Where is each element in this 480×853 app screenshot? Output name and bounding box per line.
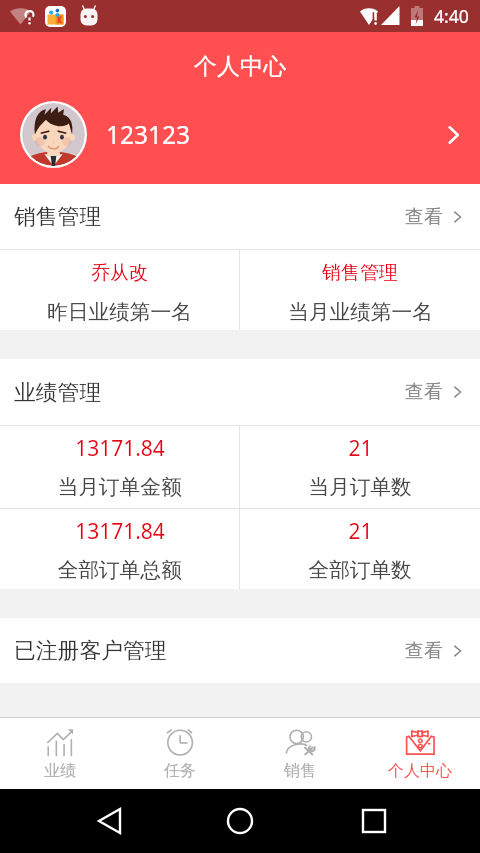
- staticText: 全部订单总额: [57, 557, 182, 583]
- button[interactable]: 个人中心: [360, 718, 480, 789]
- staticText: 个人中心: [388, 761, 452, 781]
- staticText: 123123: [106, 118, 191, 151]
- staticText: 昨日业绩第一名: [47, 299, 192, 325]
- staticText: 当月订单金额: [57, 474, 182, 500]
- staticText: 全部订单数: [308, 557, 412, 583]
- staticText: 13171.84: [75, 434, 165, 463]
- staticText: 查看: [405, 639, 443, 663]
- button[interactable]: 业绩: [0, 718, 120, 789]
- staticText: 4:40: [434, 4, 469, 28]
- button[interactable]: 销售: [240, 718, 360, 789]
- staticText: 业绩管理: [14, 379, 102, 406]
- staticText: 任务: [164, 761, 196, 781]
- staticText: 乔从改: [91, 261, 148, 285]
- button[interactable]: 销售管理: [0, 184, 480, 249]
- button[interactable]: 乔从改: [0, 250, 239, 330]
- button[interactable]: 业绩管理: [0, 359, 480, 425]
- staticText: 查看: [405, 380, 443, 404]
- button[interactable]: 任务: [120, 718, 240, 789]
- staticText: 21: [348, 517, 373, 546]
- staticText: 当月订单数: [308, 474, 412, 500]
- staticText: 销售管理: [322, 261, 398, 285]
- staticText: 查看: [405, 205, 443, 229]
- staticText: 个人中心: [194, 52, 286, 81]
- button[interactable]: 123123: [0, 101, 480, 168]
- staticText: 13171.84: [75, 517, 165, 546]
- staticText: 销售: [284, 761, 316, 781]
- staticText: 业绩: [44, 761, 76, 781]
- button[interactable]: 已注册客户管理: [0, 618, 480, 683]
- button[interactable]: 21: [240, 509, 480, 589]
- staticText: 当月业绩第一名: [288, 299, 433, 325]
- button[interactable]: 13171.84: [0, 426, 239, 508]
- button[interactable]: 21: [240, 426, 480, 508]
- other: Open profile: [441, 123, 465, 147]
- staticText: 21: [348, 434, 373, 463]
- button[interactable]: 13171.84: [0, 509, 239, 589]
- staticText: 销售管理: [14, 203, 102, 230]
- staticText: 已注册客户管理: [14, 637, 167, 664]
- button[interactable]: 销售管理: [240, 250, 480, 330]
